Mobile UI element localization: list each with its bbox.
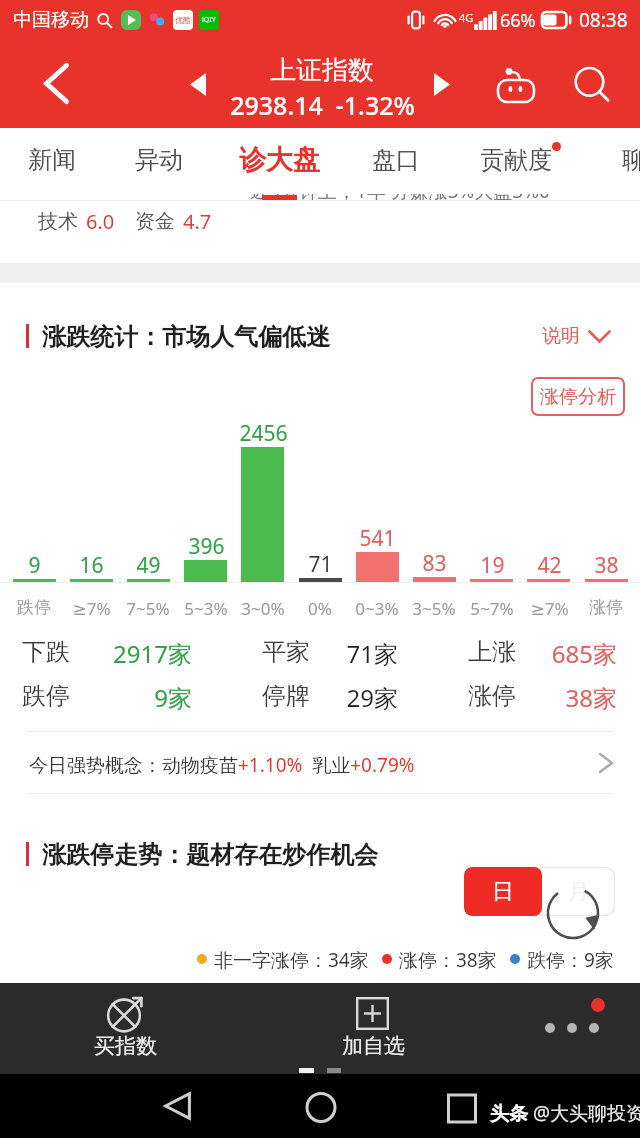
staticText: 上证指数 [270, 54, 374, 87]
staticText: 跌停 [17, 597, 51, 618]
staticText: 4G [459, 10, 474, 25]
staticText: 3~5% [412, 597, 456, 620]
staticText: 贡献度 [480, 145, 552, 175]
staticText: 3~0% [241, 597, 285, 620]
button[interactable]: 涨停分析 [531, 377, 625, 416]
staticText: ≥7% [72, 597, 111, 620]
staticText: 下跌 [22, 637, 70, 667]
button[interactable]: Next index [418, 40, 466, 128]
button[interactable]: 新闻 [4, 128, 100, 193]
staticText: 今日强势概念：动物疫苗+1.10% 乳业+0.79% [29, 752, 415, 778]
button[interactable]: 买指数 [50, 983, 200, 1069]
button[interactable]: 诊大盘 [231, 128, 327, 193]
staticText: 0% [308, 597, 332, 620]
button[interactable]: AI assistant [484, 40, 548, 128]
staticText: 9家 [154, 681, 192, 714]
staticText: 5~7% [470, 597, 514, 620]
button[interactable]: Previous index [174, 40, 222, 128]
staticText: 涨停：38家 [399, 947, 497, 971]
staticText: 71 [308, 550, 333, 579]
staticText: 涨跌停走势：题材存在炒作机会 [42, 840, 378, 870]
staticText: 42 [537, 551, 562, 580]
staticText: 买指数 [94, 1033, 157, 1059]
staticText: 诊大盘 [239, 143, 320, 177]
staticText: 38 [594, 551, 619, 580]
staticText: 聊 [622, 145, 640, 175]
staticText: iQIY [202, 15, 216, 25]
staticText: 16 [79, 551, 104, 580]
button[interactable]: Search [560, 40, 632, 128]
staticText: 说明 [542, 324, 580, 348]
staticText: 近5分钟上，1年 分赚涨3%大盘3%0 [250, 194, 550, 204]
staticText: 4.7 [183, 208, 212, 235]
staticText: 涨停 [589, 597, 623, 618]
staticText: 优酷 [175, 15, 191, 25]
staticText: 2938.14 -1.32% [230, 88, 415, 122]
staticText: 资金 [135, 209, 175, 234]
button[interactable]: 说明 [536, 312, 617, 360]
staticText: 技术 [38, 209, 78, 234]
staticText: 396 [188, 532, 225, 561]
staticText: 涨停 [468, 681, 516, 711]
staticText: 08:38 [579, 7, 628, 33]
staticText: 9 [28, 551, 41, 580]
button[interactable]: 加自选 [298, 983, 448, 1069]
staticText: 月 [568, 878, 590, 906]
staticText: 涨停分析 [540, 385, 616, 409]
button[interactable]: 月 [542, 867, 615, 916]
staticText: 非一字涨停：34家 [214, 947, 369, 971]
staticText: 6.0 [86, 208, 115, 235]
button[interactable]: 今日强势概念：动物疫苗+1.10% 乳业+0.79% [0, 732, 640, 793]
button[interactable]: Home [295, 1082, 347, 1134]
button[interactable]: More options [500, 983, 640, 1069]
staticText: 541 [359, 524, 396, 553]
staticText: 新闻 [28, 145, 76, 175]
staticText: 头条 [490, 1102, 528, 1126]
staticText: 2456 [239, 419, 288, 448]
button[interactable]: 盘口 [348, 128, 444, 193]
staticText: 685家 [551, 637, 617, 670]
staticText: 49 [136, 551, 161, 580]
staticText: 2917家 [113, 637, 192, 670]
staticText: 7~5% [126, 597, 170, 620]
button[interactable]: Back [20, 40, 94, 128]
staticText: 0~3% [355, 597, 399, 620]
button[interactable]: 日 [464, 867, 542, 916]
staticText: 19 [480, 551, 505, 580]
staticText: 5~3% [184, 597, 228, 620]
button[interactable]: 异动 [111, 128, 207, 193]
staticText: 38家 [565, 681, 617, 714]
staticText: ≥7% [530, 597, 569, 620]
staticText: 日 [492, 878, 514, 906]
staticText: @大头聊投资 [533, 1100, 640, 1126]
staticText: 跌停：9家 [527, 947, 614, 971]
staticText: 上涨 [468, 637, 516, 667]
staticText: 盘口 [372, 145, 420, 175]
staticText: 平家 [262, 637, 310, 667]
button[interactable]: Back [152, 1080, 204, 1132]
button[interactable]: Recent apps [436, 1082, 488, 1134]
staticText: 停牌 [262, 681, 310, 711]
staticText: 异动 [135, 145, 183, 175]
staticText: 涨跌统计：市场人气偏低迷 [42, 322, 330, 352]
button[interactable]: 聊 [586, 128, 640, 193]
staticText: 加自选 [342, 1033, 405, 1059]
staticText: 29家 [346, 681, 398, 714]
staticText: 83 [422, 549, 447, 578]
staticText: 71家 [346, 637, 398, 670]
staticText: 66% [500, 8, 536, 33]
button[interactable]: 贡献度 [468, 128, 564, 193]
staticText: 跌停 [22, 681, 70, 711]
staticText: 中国移动 [13, 8, 89, 32]
